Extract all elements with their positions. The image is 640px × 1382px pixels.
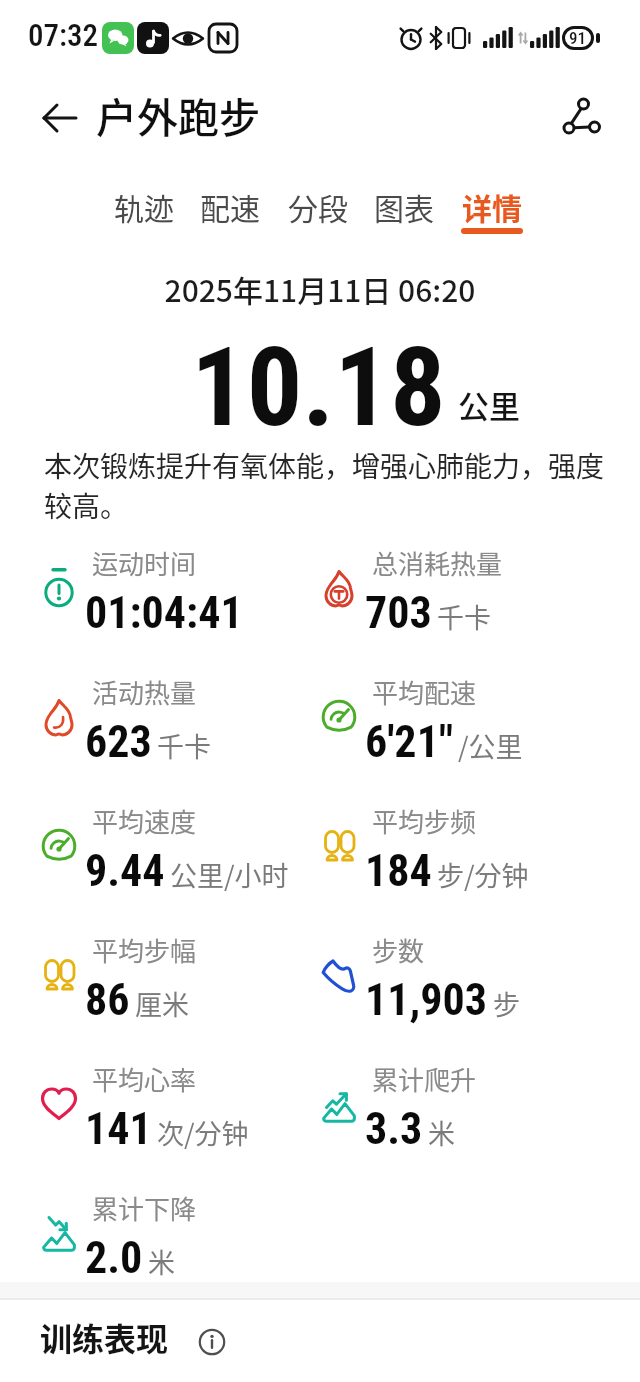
staticText: 次/分钟 xyxy=(157,1113,249,1152)
staticText: 厘米 xyxy=(135,984,189,1023)
staticText: 平均速度 xyxy=(92,802,197,840)
staticText: 3.3 xyxy=(365,1103,423,1155)
button[interactable]: 训练表现 xyxy=(40,1314,169,1360)
staticText: 11,903 xyxy=(365,974,488,1026)
button[interactable]: 详情 xyxy=(462,185,522,228)
staticText: 千卡 xyxy=(157,726,211,765)
staticText: 10.18 xyxy=(191,323,446,452)
staticText: 米 xyxy=(428,1113,455,1152)
button[interactable]: 轨迹 xyxy=(114,185,174,228)
button[interactable] xyxy=(34,92,86,144)
staticText: 6'21" xyxy=(365,716,453,768)
button[interactable]: 分段 xyxy=(288,185,348,228)
staticText: 184 xyxy=(365,845,432,897)
staticText: 86 xyxy=(85,974,130,1026)
staticText: 91 xyxy=(569,28,587,48)
staticText: 运动时间 xyxy=(92,544,197,582)
staticText: 总消耗热量 xyxy=(372,544,503,582)
staticText: 米 xyxy=(148,1242,175,1281)
staticText: 平均步幅 xyxy=(92,931,197,969)
staticText: /公里 xyxy=(458,726,523,765)
staticText: 步 xyxy=(493,984,520,1023)
staticText: 步/分钟 xyxy=(437,855,529,894)
staticText: 9.44 xyxy=(85,845,165,897)
staticText: 步数 xyxy=(372,931,425,969)
button[interactable]: 配速 xyxy=(200,185,260,228)
staticText: 平均配速 xyxy=(372,673,477,711)
staticText: 本次锻炼提升有氧体能，增强心肺能力，强度较高。 xyxy=(44,445,610,525)
button[interactable] xyxy=(555,93,605,143)
staticText: 累计爬升 xyxy=(372,1060,477,1098)
staticText: 07:32 xyxy=(28,17,99,53)
staticText: 公里 xyxy=(458,382,520,427)
staticText: 累计下降 xyxy=(92,1189,197,1227)
button[interactable]: 图表 xyxy=(374,185,434,228)
staticText: 公里/小时 xyxy=(170,855,289,894)
staticText: 户外跑步 xyxy=(96,85,260,144)
staticText: 训练表现 xyxy=(40,1314,169,1360)
staticText: 2025年11月11日 06:20 xyxy=(0,267,640,310)
staticText: 平均步频 xyxy=(372,802,477,840)
staticText: 平均心率 xyxy=(92,1060,197,1098)
staticText: 703 xyxy=(365,587,432,639)
staticText: 01:04:41 xyxy=(85,587,243,639)
staticText: 623 xyxy=(85,716,152,768)
staticText: 2.0 xyxy=(85,1232,143,1284)
staticText: 141 xyxy=(85,1103,152,1155)
staticText: 千卡 xyxy=(437,597,491,636)
staticText: 活动热量 xyxy=(92,673,197,711)
